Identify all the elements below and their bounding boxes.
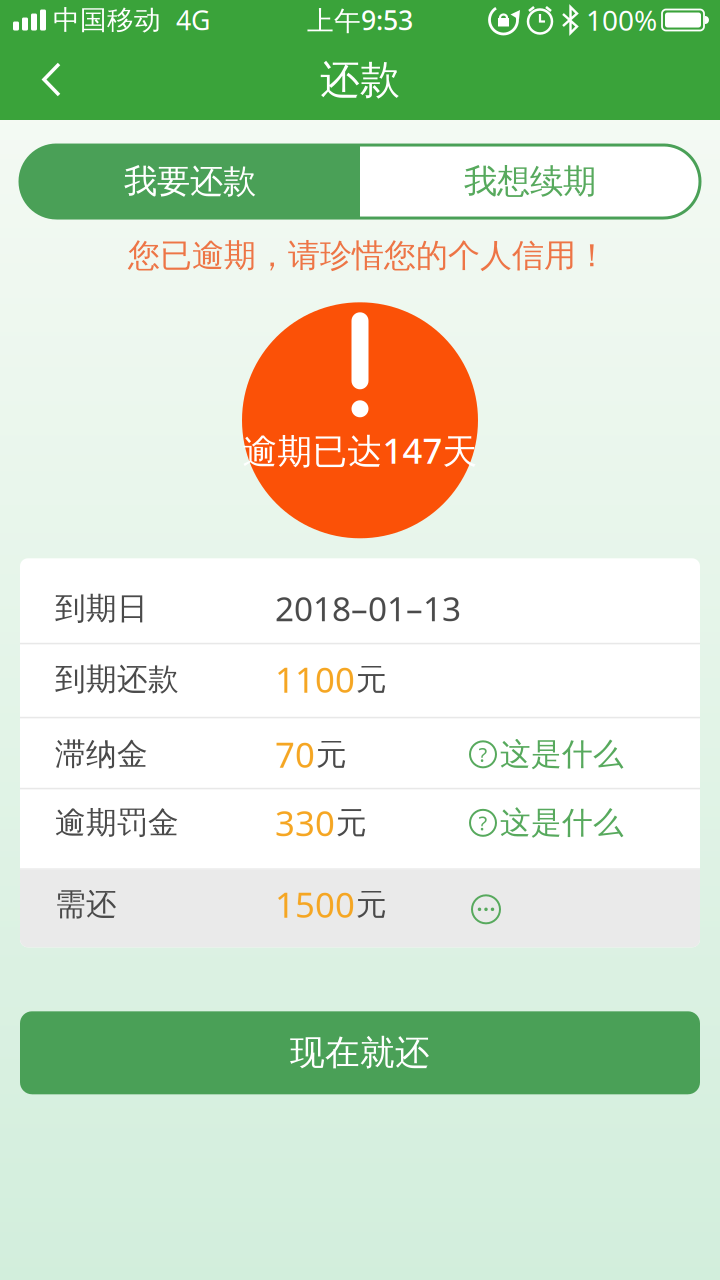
staticText: 这是什么 — [500, 804, 624, 842]
staticText: 元 — [316, 735, 347, 773]
button[interactable]: 现在就还 — [20, 1011, 700, 1094]
staticText: 70 — [275, 731, 315, 777]
button[interactable]: 我想续期 — [360, 145, 700, 218]
staticText: 我要还款 — [124, 161, 256, 202]
staticText: 元 — [336, 804, 367, 842]
staticText: ? — [478, 809, 487, 836]
staticText: 中国移动 — [53, 4, 161, 36]
button[interactable]: Back — [0, 41, 62, 119]
button[interactable]: ? — [470, 804, 624, 842]
staticText: ? — [478, 741, 487, 768]
staticText: 您已逾期，请珍惜您的个人信用！ — [128, 236, 608, 275]
staticText: 这是什么 — [500, 735, 624, 773]
staticText: 滞纳金 — [55, 735, 148, 773]
staticText: 4G — [176, 2, 210, 38]
staticText: 2018–01–13 — [275, 586, 461, 631]
button[interactable]: More — [472, 895, 500, 923]
staticText: 元 — [356, 885, 387, 923]
button[interactable]: 我要还款 — [20, 145, 360, 218]
staticText: 我想续期 — [464, 161, 596, 202]
staticText: 上午9:53 — [307, 2, 413, 38]
staticText: 1500 — [275, 881, 355, 927]
staticText: 逾期罚金 — [55, 804, 179, 842]
staticText: 1100 — [275, 656, 355, 702]
staticText: 还款 — [320, 55, 400, 104]
staticText: 逾期已达147天 — [242, 427, 477, 473]
button[interactable]: ? — [470, 735, 624, 773]
staticText: 元 — [356, 660, 387, 698]
staticText: 330 — [275, 800, 335, 846]
staticText: 100% — [586, 1, 657, 39]
staticText: 现在就还 — [290, 1031, 430, 1074]
staticText: 到期日 — [55, 590, 148, 627]
staticText: 到期还款 — [55, 660, 179, 698]
staticText: 需还 — [55, 885, 117, 923]
